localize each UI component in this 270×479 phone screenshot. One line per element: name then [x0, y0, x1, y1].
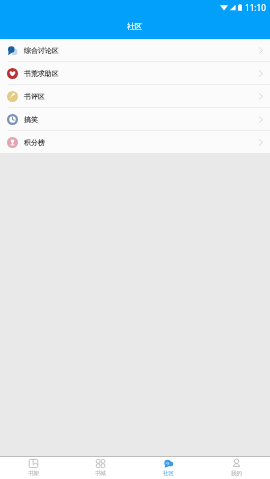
staticText: 书城	[95, 470, 106, 477]
button[interactable]: 搞笑	[0, 108, 270, 130]
button[interactable]: 社区	[134, 457, 202, 479]
staticText: 书评区	[24, 92, 45, 101]
button[interactable]: 书评区	[0, 85, 270, 107]
staticText: 社区	[163, 470, 174, 477]
button[interactable]: 书架	[0, 457, 67, 479]
staticText: 书荒求助区	[24, 69, 59, 78]
button[interactable]: 书荒求助区	[0, 62, 270, 84]
button[interactable]: 综合讨论区	[0, 39, 270, 61]
staticText: 综合讨论区	[24, 46, 59, 55]
staticText: 搞笑	[24, 115, 38, 124]
button[interactable]: 我的	[202, 457, 270, 479]
staticText: 积分榜	[24, 138, 45, 147]
button[interactable]: 书城	[67, 457, 134, 479]
staticText: 我的	[231, 470, 242, 477]
staticText: 11:10	[245, 2, 266, 13]
staticText: 书架	[28, 470, 39, 477]
button[interactable]: 积分榜	[0, 131, 270, 153]
staticText: 社区	[127, 22, 143, 32]
